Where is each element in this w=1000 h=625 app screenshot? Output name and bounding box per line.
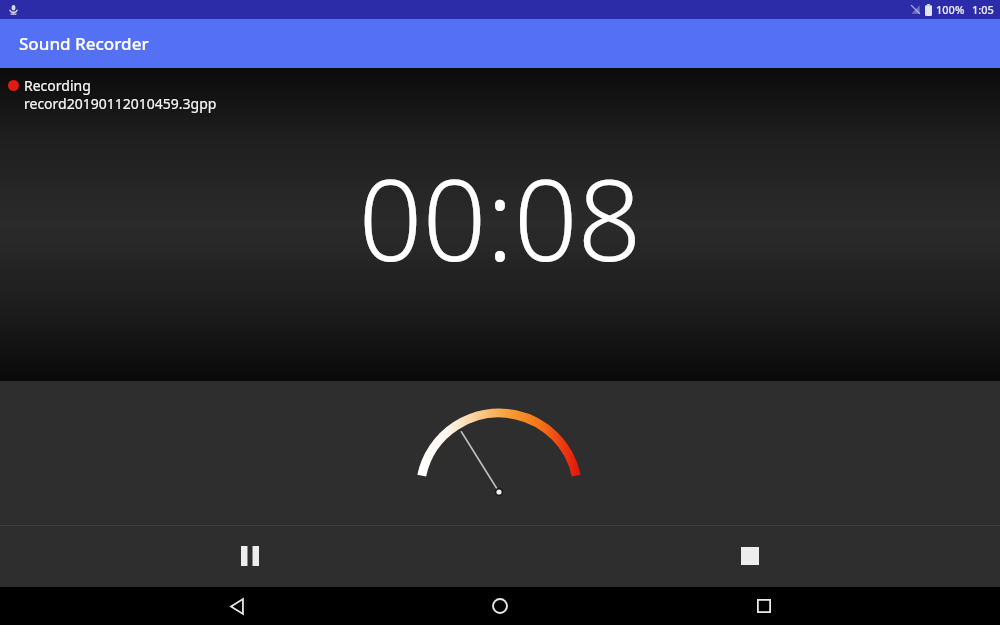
- staticText: 00:08: [358, 141, 642, 294]
- staticText: 100%: [936, 2, 965, 17]
- button[interactable]: Recent apps: [737, 587, 791, 625]
- staticText: Recording: [24, 76, 91, 95]
- staticText: Sound Recorder: [19, 32, 149, 55]
- button[interactable]: Back: [210, 587, 264, 625]
- staticText: record20190112010459.3gpp: [24, 94, 217, 113]
- staticText: 1:05: [972, 2, 994, 17]
- button[interactable]: Pause recording: [210, 525, 290, 587]
- button[interactable]: Stop recording: [710, 525, 790, 587]
- button[interactable]: Home: [473, 587, 527, 625]
